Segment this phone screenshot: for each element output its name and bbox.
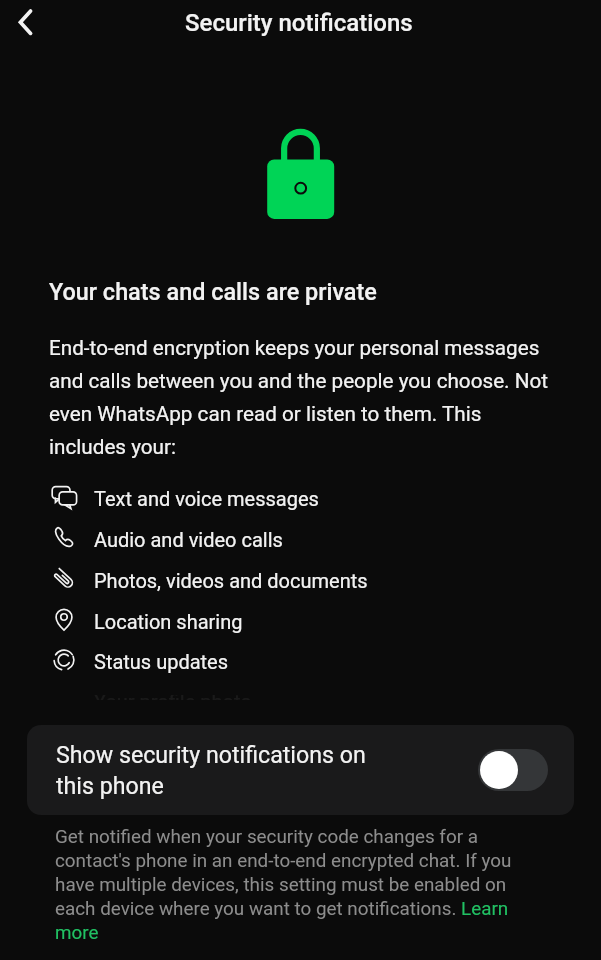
staticText: End-to-end encryption keeps your persona… [49,329,554,461]
staticText: Your profile photo [94,695,252,700]
staticText: Text and voice messages [94,487,319,511]
button[interactable]: Back [1,0,45,44]
button[interactable]: Show security notifications on this phon… [478,749,548,791]
staticText: Security notifications [185,9,413,37]
button[interactable]: Show security notifications on this phon… [27,725,574,815]
button[interactable]: Learn more [455,897,511,921]
staticText: Audio and video calls [94,528,283,552]
staticText: Show security notifications on this phon… [56,739,386,801]
staticText: Status updates [94,650,229,674]
staticText: Photos, videos and documents [94,569,368,593]
button[interactable]: Learn more [55,921,105,945]
staticText: Location sharing [94,610,243,634]
staticText: Your chats and calls are private [49,278,377,306]
staticText: Get notified when your security code cha… [55,824,533,944]
